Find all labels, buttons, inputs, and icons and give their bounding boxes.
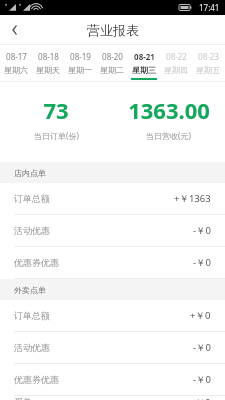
staticText: -￥0 <box>193 224 211 237</box>
staticText: 活动优惠 <box>14 225 50 236</box>
button[interactable]: 1363.00 <box>112 95 225 141</box>
staticText: +￥0 <box>190 309 211 322</box>
staticText: -￥0 <box>193 373 211 386</box>
staticText: +￥1363 <box>174 192 211 205</box>
staticText: 外卖点单 <box>14 285 46 295</box>
staticText: 1363.00 <box>128 95 210 125</box>
staticText: 星期四 <box>164 65 188 75</box>
button[interactable]: 买单 <box>0 396 225 400</box>
button[interactable]: 订单总额 <box>0 183 225 214</box>
staticText: 08-21 <box>134 51 155 62</box>
button[interactable]: 08-21 <box>128 45 160 82</box>
staticText: 当日营收(元) <box>146 130 191 141</box>
button[interactable]: 08-23 <box>192 45 224 82</box>
staticText: 买单 <box>14 396 32 400</box>
button[interactable]: Back <box>0 15 30 45</box>
button[interactable]: 08-22 <box>160 45 192 82</box>
staticText: 活动优惠 <box>14 342 50 353</box>
staticText: 星期六 <box>4 65 28 75</box>
staticText: 店内点单 <box>14 168 46 178</box>
staticText: +￥0 <box>190 396 211 400</box>
staticText: 优惠券优惠 <box>14 374 59 385</box>
staticText: 08-18 <box>38 51 59 62</box>
staticText: -￥0 <box>193 256 211 269</box>
staticText: 73 <box>43 95 69 125</box>
staticText: 营业报表 <box>87 22 139 38</box>
staticText: 星期一 <box>68 65 92 75</box>
button[interactable]: 08-18 <box>32 45 64 82</box>
button[interactable]: 08-17 <box>0 45 32 82</box>
button[interactable]: 73 <box>0 95 112 141</box>
button[interactable]: 08-19 <box>64 45 96 82</box>
staticText: 星期二 <box>100 65 124 75</box>
button[interactable]: 08-20 <box>96 45 128 82</box>
button[interactable]: 优惠券优惠 <box>0 364 225 395</box>
button[interactable]: 优惠券优惠 <box>0 247 225 278</box>
staticText: 08-17 <box>6 51 27 62</box>
staticText: 订单总额 <box>14 193 50 204</box>
staticText: -￥0 <box>193 341 211 354</box>
staticText: 当日订单(份) <box>34 130 79 141</box>
staticText: 17:41 <box>199 2 220 13</box>
staticText: 08-23 <box>198 51 219 62</box>
staticText: 星期天 <box>36 65 60 75</box>
button[interactable]: 活动优惠 <box>0 215 225 246</box>
button[interactable]: 订单总额 <box>0 300 225 331</box>
staticText: 08-20 <box>102 51 123 62</box>
staticText: 08-22 <box>166 51 187 62</box>
staticText: 星期五 <box>196 65 220 75</box>
staticText: 优惠券优惠 <box>14 257 59 268</box>
staticText: 星期三 <box>132 65 156 75</box>
staticText: 08-19 <box>70 51 91 62</box>
staticText: 订单总额 <box>14 310 50 321</box>
button[interactable]: 活动优惠 <box>0 332 225 363</box>
